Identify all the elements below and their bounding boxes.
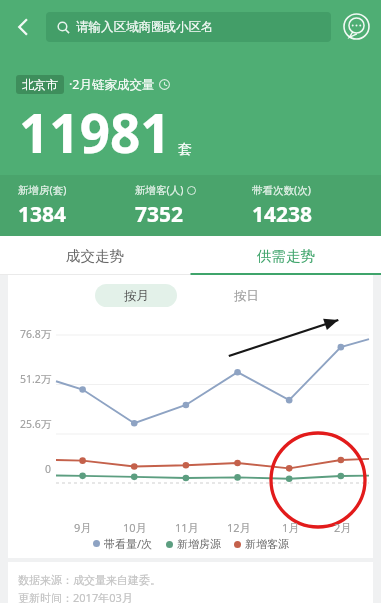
- staticText: 1月: [282, 520, 300, 535]
- staticText: 新增房源: [177, 537, 221, 551]
- staticText: 成交走势: [66, 247, 124, 265]
- button[interactable]: 新增房源: [166, 537, 221, 551]
- button[interactable]: 新增客源: [234, 537, 289, 551]
- button[interactable]: 新增房(套): [18, 183, 135, 229]
- button[interactable]: 按日: [205, 284, 287, 307]
- staticText: ·2月链家成交量: [69, 76, 155, 93]
- staticText: 套: [178, 141, 192, 159]
- staticText: 10月: [123, 520, 147, 535]
- staticText: 2月: [334, 520, 352, 535]
- button[interactable]: 带看量/次: [93, 536, 153, 551]
- staticText: 9月: [74, 520, 92, 535]
- staticText: 0: [45, 462, 52, 476]
- button[interactable]: 新增客(人): [135, 183, 252, 229]
- staticText: 数据来源：成交量来自建委。: [18, 573, 161, 587]
- button[interactable]: Info: [159, 79, 170, 90]
- staticText: 北京市: [22, 77, 58, 92]
- button[interactable]: Messages: [331, 0, 381, 53]
- button[interactable]: 供需走势: [190, 236, 381, 275]
- staticText: 11月: [175, 520, 199, 535]
- staticText: 供需走势: [257, 247, 315, 265]
- staticText: 14238: [252, 200, 313, 229]
- button[interactable]: 请输入区域商圈或小区名: [46, 12, 331, 42]
- button[interactable]: 带看次数(次): [252, 183, 369, 229]
- staticText: 7352: [135, 200, 184, 229]
- button[interactable]: 按月: [95, 284, 177, 307]
- staticText: 11981: [19, 96, 171, 168]
- staticText: 51.2万: [20, 372, 52, 386]
- staticText: 请输入区域商圈或小区名: [76, 19, 214, 35]
- staticText: 新增客(人): [135, 183, 184, 197]
- staticText: 76.8万: [20, 327, 52, 341]
- button[interactable]: 成交走势: [0, 236, 190, 275]
- staticText: 12月: [227, 520, 251, 535]
- button[interactable]: 北京市: [22, 77, 58, 92]
- staticText: 更新时间：2017年03月: [18, 590, 133, 603]
- staticText: 带看量/次: [104, 536, 153, 551]
- staticText: 新增客源: [245, 537, 289, 551]
- staticText: 按月: [124, 288, 149, 304]
- staticText: 按日: [234, 288, 259, 304]
- staticText: 1384: [18, 200, 67, 229]
- staticText: 带看次数(次): [252, 183, 311, 197]
- staticText: 新增房(套): [18, 183, 67, 197]
- staticText: 25.6万: [20, 417, 52, 431]
- button[interactable]: Back: [0, 0, 46, 53]
